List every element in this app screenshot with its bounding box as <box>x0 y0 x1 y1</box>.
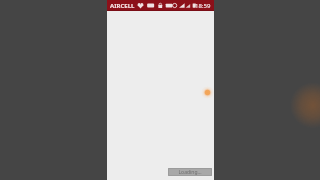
button[interactable]: Action <box>201 86 214 99</box>
staticText: Loading... <box>178 169 202 176</box>
staticText: AIRCELL <box>110 2 135 10</box>
button[interactable]: Loading... <box>168 168 212 176</box>
staticText: 18:59 <box>195 2 211 10</box>
